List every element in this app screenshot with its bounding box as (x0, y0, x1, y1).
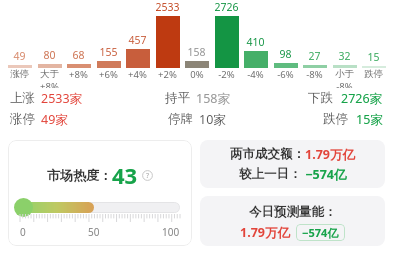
staticText: 158 (187, 45, 206, 59)
staticText: 2726家 (341, 90, 383, 107)
staticText: 49家 (41, 111, 68, 128)
staticText: 0% (190, 68, 204, 81)
button[interactable]: 说明 (142, 170, 153, 181)
staticText: 跌停 (364, 68, 383, 80)
button[interactable]: 市场热度： (8, 140, 192, 246)
staticText: -4% (247, 68, 264, 81)
staticText: 50 (88, 225, 100, 239)
staticText: 49 (13, 49, 26, 63)
staticText: +2% (158, 68, 177, 81)
staticText: 80 (43, 48, 56, 62)
staticText: 410 (246, 35, 265, 49)
staticText: ? (146, 171, 150, 181)
staticText: 457 (128, 33, 147, 47)
staticText: +4% (128, 68, 147, 81)
staticText: 市场热度： (47, 167, 112, 183)
staticText: 2533 (155, 0, 180, 14)
staticText: 两市成交额： (230, 146, 305, 162)
button[interactable]: 今日预测量能： (200, 196, 385, 246)
staticText: 涨停 (10, 68, 29, 80)
staticText: 小于 (335, 68, 354, 80)
staticText: 100 (162, 225, 180, 239)
staticText: 27 (308, 49, 321, 63)
staticText: 涨停 (10, 111, 35, 127)
staticText: 10家 (199, 111, 226, 128)
staticText: 大于 (40, 68, 59, 80)
staticText: +8% (69, 68, 88, 81)
staticText: +8% (40, 80, 59, 88)
staticText: 15家 (356, 111, 383, 128)
staticText: -8% (336, 80, 353, 88)
staticText: 15 (367, 50, 380, 64)
staticText: -8% (306, 68, 323, 81)
staticText: 2726 (214, 0, 239, 14)
button[interactable]: 两市成交额： (200, 140, 385, 188)
button[interactable]: 热度指针 (14, 198, 33, 217)
staticText: 下跌 (308, 90, 333, 106)
staticText: 158家 (196, 90, 230, 107)
staticText: +6% (99, 68, 118, 81)
staticText: -2% (218, 68, 235, 81)
staticText: −574亿 (302, 225, 339, 240)
staticText: 今日预测量能： (249, 204, 337, 220)
staticText: -6% (277, 68, 294, 81)
staticText: −574亿 (302, 166, 347, 183)
staticText: 跌停 (323, 111, 348, 127)
staticText: 1.79万亿 (305, 146, 355, 163)
staticText: 2533家 (41, 90, 83, 107)
staticText: 32 (338, 49, 351, 63)
staticText: 1.79万亿 (240, 224, 290, 241)
staticText: 0 (20, 225, 26, 239)
staticText: 较上一日： (239, 166, 302, 182)
staticText: 98 (279, 47, 292, 61)
staticText: 上涨 (10, 90, 35, 106)
staticText: 持平 (165, 90, 190, 106)
staticText: 停牌 (168, 111, 193, 127)
staticText: 43 (112, 160, 138, 190)
staticText: 155 (99, 45, 118, 59)
staticText: 68 (72, 48, 85, 62)
